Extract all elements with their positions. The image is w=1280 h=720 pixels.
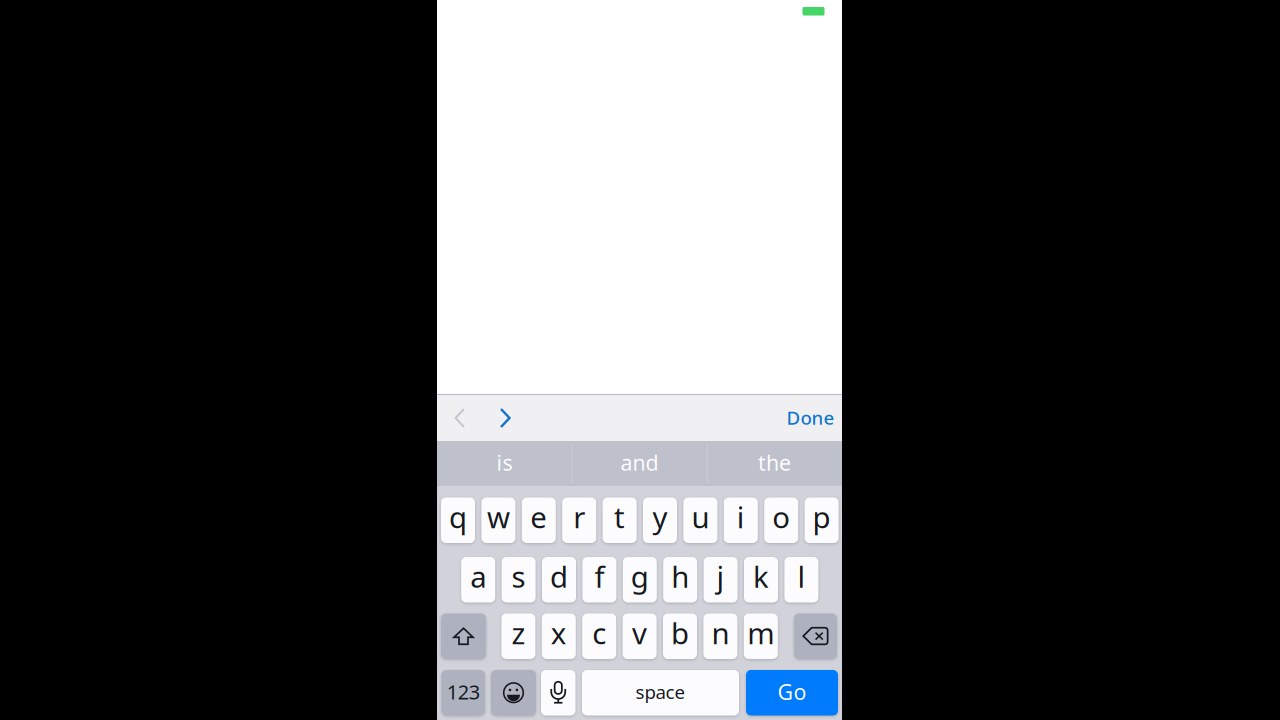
staticText: j [717, 557, 725, 596]
button[interactable]: p [805, 497, 839, 543]
button[interactable]: the [707, 441, 842, 486]
button[interactable]: Next field [498, 407, 511, 428]
button[interactable]: q [441, 497, 475, 543]
staticText: l [797, 557, 805, 596]
button[interactable]: Done [760, 402, 834, 433]
staticText: the [758, 448, 791, 477]
button[interactable]: k [744, 557, 778, 602]
staticText: i [737, 497, 745, 536]
staticText: space [635, 679, 685, 704]
staticText: z [511, 613, 525, 652]
button[interactable]: n [703, 613, 737, 659]
button[interactable]: 123 [441, 670, 485, 715]
button[interactable]: e [522, 497, 556, 543]
button[interactable]: y [643, 497, 677, 543]
button[interactable]: Delete [794, 613, 837, 659]
button[interactable]: space [582, 670, 739, 715]
staticText: Done [786, 405, 834, 430]
staticText: q [449, 497, 467, 536]
button[interactable]: Shift [441, 613, 486, 659]
staticText: is [496, 448, 512, 477]
button[interactable]: c [582, 613, 616, 659]
staticText: n [711, 613, 729, 652]
staticText: y [652, 497, 667, 536]
button[interactable]: Previous field [453, 407, 466, 428]
button[interactable]: h [663, 557, 697, 602]
button[interactable]: x [542, 613, 576, 659]
button[interactable]: r [562, 497, 596, 543]
staticText: c [592, 613, 606, 652]
staticText: p [813, 497, 831, 536]
staticText: o [772, 497, 790, 536]
button[interactable]: is [437, 441, 572, 486]
staticText: d [550, 557, 568, 596]
staticText: x [551, 613, 567, 652]
staticText: m [747, 613, 774, 652]
staticText: Go [777, 678, 806, 706]
button[interactable]: Emoji [491, 670, 536, 715]
staticText: s [512, 557, 526, 596]
button[interactable]: Go [746, 670, 838, 715]
button[interactable]: j [704, 557, 738, 602]
staticText: t [614, 497, 625, 536]
staticText: k [753, 557, 769, 596]
staticText: e [530, 497, 547, 536]
staticText: and [620, 448, 658, 477]
button[interactable]: s [502, 557, 536, 602]
staticText: w [487, 497, 510, 536]
button[interactable]: d [542, 557, 576, 602]
button[interactable]: b [663, 613, 697, 659]
button[interactable]: l [784, 557, 818, 602]
staticText: u [691, 497, 709, 536]
button[interactable]: m [744, 613, 778, 659]
staticText: g [631, 557, 649, 596]
button[interactable]: g [623, 557, 657, 602]
staticText: a [470, 557, 486, 596]
button[interactable]: v [623, 613, 657, 659]
button[interactable]: t [603, 497, 637, 543]
button[interactable]: i [724, 497, 758, 543]
button[interactable]: w [481, 497, 515, 543]
button[interactable]: o [764, 497, 798, 543]
button[interactable]: z [501, 613, 535, 659]
staticText: f [594, 557, 604, 596]
staticText: h [671, 557, 689, 596]
staticText: v [632, 613, 647, 652]
button[interactable]: u [683, 497, 717, 543]
staticText: 123 [447, 678, 480, 705]
button[interactable]: and [572, 441, 707, 486]
staticText: b [671, 613, 689, 652]
button[interactable]: a [461, 557, 495, 602]
button[interactable]: f [582, 557, 616, 602]
staticText: r [573, 497, 585, 536]
button[interactable]: Dictation [541, 670, 575, 715]
